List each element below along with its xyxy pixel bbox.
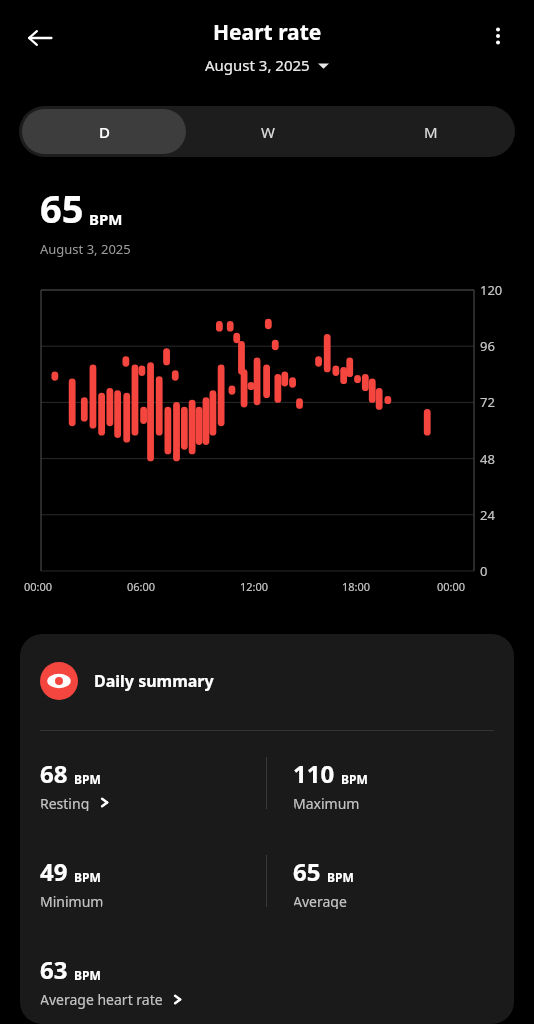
button[interactable]: W bbox=[186, 109, 349, 154]
staticText: M bbox=[424, 122, 438, 142]
staticText: 65 bbox=[40, 182, 84, 234]
staticText: Average heart rate bbox=[40, 990, 163, 1009]
staticText: BPM bbox=[74, 869, 101, 885]
button[interactable]: M bbox=[349, 109, 512, 154]
button[interactable]: 110 bbox=[293, 757, 368, 811]
staticText: 00:00 bbox=[437, 579, 466, 594]
button[interactable]: 65 bbox=[293, 855, 354, 909]
button[interactable]: Back bbox=[16, 14, 64, 62]
staticText: Maximum bbox=[293, 794, 360, 811]
staticText: BPM bbox=[327, 869, 354, 885]
staticText: 65 bbox=[293, 855, 321, 888]
staticText: 68 bbox=[40, 757, 68, 790]
staticText: Resting bbox=[40, 794, 90, 811]
staticText: 0 bbox=[480, 562, 488, 580]
staticText: 12:00 bbox=[240, 579, 269, 594]
button[interactable]: D bbox=[22, 109, 186, 154]
staticText: 96 bbox=[480, 337, 495, 355]
staticText: August 3, 2025 bbox=[40, 240, 131, 258]
staticText: 72 bbox=[480, 393, 495, 411]
staticText: BPM bbox=[74, 771, 101, 787]
staticText: D bbox=[99, 122, 110, 142]
staticText: Average bbox=[293, 892, 347, 909]
staticText: BPM bbox=[89, 209, 123, 229]
staticText: Heart rate bbox=[213, 18, 322, 47]
staticText: Daily summary bbox=[94, 670, 214, 692]
staticText: W bbox=[261, 122, 275, 142]
staticText: BPM bbox=[341, 771, 368, 787]
button[interactable]: More options bbox=[476, 14, 520, 58]
staticText: 00:00 bbox=[24, 579, 53, 594]
staticText: BPM bbox=[74, 967, 101, 983]
staticText: August 3, 2025 bbox=[205, 55, 310, 75]
button[interactable]: 63 bbox=[40, 953, 183, 1009]
staticText: 49 bbox=[40, 855, 68, 888]
button[interactable]: 49 bbox=[40, 855, 104, 909]
staticText: 120 bbox=[480, 281, 503, 299]
staticText: Minimum bbox=[40, 892, 104, 909]
staticText: 24 bbox=[480, 506, 495, 524]
button[interactable]: 68 bbox=[40, 757, 110, 811]
staticText: 48 bbox=[480, 450, 495, 468]
staticText: 63 bbox=[40, 953, 68, 986]
staticText: 06:00 bbox=[127, 579, 156, 594]
staticText: 110 bbox=[293, 757, 335, 790]
button[interactable]: August 3, 2025 bbox=[199, 53, 335, 77]
button[interactable]: Daily summary bbox=[20, 634, 514, 1024]
staticText: 18:00 bbox=[342, 579, 371, 594]
